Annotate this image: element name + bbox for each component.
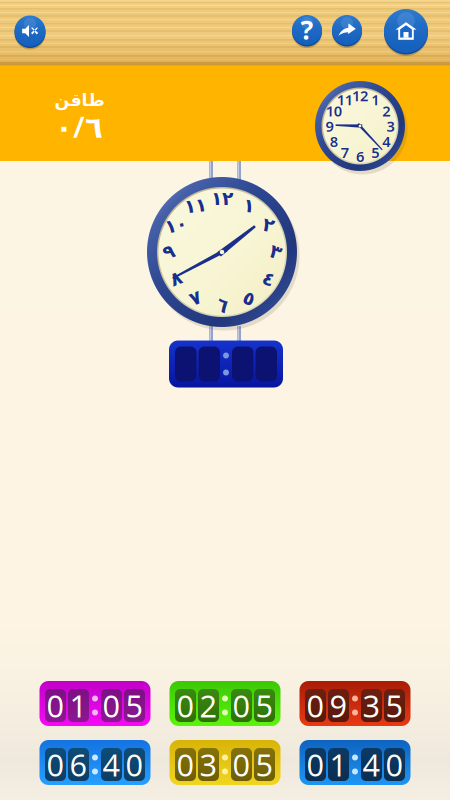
staticText: 6 [69,744,87,785]
staticText: ٠/٦ [55,107,103,146]
staticText: 1 [371,90,379,109]
staticText: 2 [199,685,217,726]
staticText: 0 [125,744,143,785]
staticText: 0 [102,685,120,726]
staticText: 4 [362,744,380,785]
staticText: 6 [356,147,364,166]
staticText: ٢ [263,215,274,236]
button[interactable]: Next [332,13,362,47]
staticText: 0 [232,744,250,785]
staticText: 5 [385,685,403,726]
staticText: 0 [176,744,194,785]
staticText: ٤ [263,268,274,289]
button[interactable]: 0 [169,740,280,785]
staticText: ٥ [243,288,254,309]
button[interactable]: 0 [39,740,150,785]
staticText: ١٢ [211,188,233,209]
staticText: ١١ [184,195,206,216]
staticText: 4 [382,131,390,151]
staticText: 0 [306,685,324,726]
staticText: 3 [362,685,380,726]
staticText: 0 [46,744,64,785]
staticText: 5 [255,744,273,785]
staticText: ٩ [163,241,174,263]
staticText: 3 [199,744,217,785]
staticText: 4 [102,744,120,785]
button[interactable]: 0 [39,681,150,726]
staticText: ١ [243,195,254,216]
button[interactable]: Help [292,13,322,47]
staticText: ٣ [270,241,281,263]
staticText: ١٠ [165,215,187,236]
staticText: 0 [46,685,64,726]
button[interactable]: Home [384,7,428,55]
button[interactable]: 0 [299,681,410,726]
staticText: 3 [386,116,394,136]
staticText: 1 [329,744,347,785]
staticText: 9 [329,685,347,726]
staticText: 0 [385,744,403,785]
staticText: 5 [255,685,273,726]
staticText: 12 [352,86,368,105]
staticText: طاقن [54,90,104,110]
button[interactable]: Mute [14,13,45,48]
staticText: 2 [382,101,390,121]
button[interactable]: 0 [299,740,410,785]
staticText: ٧ [190,288,201,309]
staticText: 0 [176,685,194,726]
staticText: ٨ [170,268,181,289]
staticText: ٦ [216,295,227,316]
staticText: 5 [125,685,143,726]
staticText: 0 [306,744,324,785]
staticText: 9 [326,116,334,136]
button[interactable]: 0 [169,681,280,726]
staticText: 11 [337,90,353,109]
staticText: 5 [371,143,379,162]
staticText: ? [300,12,313,47]
staticText: 7 [341,143,349,162]
staticText: 0 [232,685,250,726]
staticText: 1 [69,685,87,726]
staticText: 8 [330,131,338,151]
staticText: 10 [326,101,342,121]
